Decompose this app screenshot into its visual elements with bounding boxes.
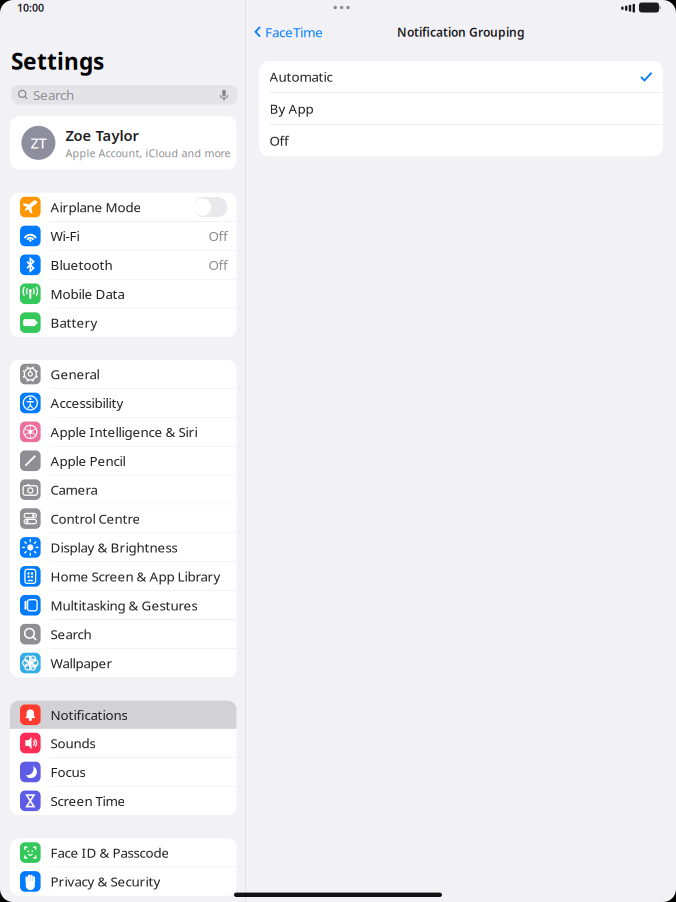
button[interactable]: Control Centre: [10, 504, 236, 533]
button[interactable]: Bluetooth: [10, 251, 236, 280]
button[interactable]: By App: [259, 93, 663, 125]
button[interactable]: Automatic: [259, 61, 663, 93]
staticText: Off: [269, 132, 288, 149]
button[interactable]: Apple Intelligence & Siri: [10, 418, 236, 447]
staticText: Sounds: [50, 734, 95, 752]
button[interactable]: Focus: [10, 758, 236, 787]
button[interactable]: Wallpaper: [10, 649, 236, 677]
staticText: Home Screen & App Library: [50, 567, 220, 585]
staticText: Apple Intelligence & Siri: [50, 423, 197, 441]
staticText: By App: [269, 100, 313, 117]
staticText: Zoe Taylor: [65, 125, 138, 145]
button[interactable]: Search: [11, 85, 237, 104]
button[interactable]: Accessibility: [10, 389, 236, 418]
staticText: Automatic: [269, 68, 332, 85]
staticText: Bluetooth: [50, 256, 112, 274]
staticText: ZT: [30, 133, 46, 153]
staticText: Privacy & Security: [50, 873, 160, 890]
button[interactable]: Notifications: [10, 701, 236, 729]
staticText: Display & Brightness: [50, 539, 177, 556]
staticText: Search: [33, 86, 74, 104]
staticText: General: [50, 365, 99, 383]
staticText: Camera: [50, 481, 97, 498]
staticText: Screen Time: [50, 792, 125, 810]
staticText: Off: [208, 256, 227, 274]
staticText: Apple Account, iCloud and more: [65, 146, 230, 160]
button[interactable]: Home Screen & App Library: [10, 562, 236, 591]
staticText: Accessibility: [50, 394, 123, 412]
staticText: Focus: [50, 763, 85, 781]
button[interactable]: FaceTime: [246, 19, 323, 45]
staticText: Battery: [50, 314, 97, 331]
button[interactable]: Display & Brightness: [10, 533, 236, 562]
staticText: FaceTime: [265, 23, 323, 41]
staticText: Settings: [11, 46, 104, 76]
button[interactable]: Face ID & Passcode: [10, 838, 236, 867]
button[interactable]: Search: [10, 620, 236, 649]
staticText: Airplane Mode: [50, 198, 141, 216]
staticText: Search: [50, 625, 91, 643]
staticText: Apple Pencil: [50, 452, 125, 470]
button[interactable]: Multitasking Controls: [325, 2, 358, 13]
staticText: Face ID & Passcode: [50, 844, 169, 861]
staticText: Control Centre: [50, 510, 140, 527]
button[interactable]: Camera: [10, 475, 236, 504]
button[interactable]: Multitasking & Gestures: [10, 591, 236, 620]
staticText: Notification Grouping: [397, 24, 525, 40]
button[interactable]: Battery: [10, 308, 236, 337]
staticText: Wallpaper: [50, 654, 112, 672]
button[interactable]: Apple Pencil: [10, 447, 236, 475]
staticText: Notifications: [50, 706, 127, 724]
button[interactable]: Sounds: [10, 729, 236, 758]
staticText: Wi-Fi: [50, 227, 79, 245]
button[interactable]: Screen Time: [10, 787, 236, 815]
button[interactable]: Airplane Mode: [10, 193, 236, 222]
button[interactable]: Privacy & Security: [10, 867, 236, 896]
button[interactable]: General: [10, 360, 236, 389]
button[interactable]: ZT: [10, 116, 236, 169]
staticText: Multitasking & Gestures: [50, 596, 197, 614]
staticText: 10:00: [17, 0, 44, 15]
button[interactable]: Wi-Fi: [10, 222, 236, 251]
button[interactable]: Off: [259, 125, 663, 156]
staticText: Mobile Data: [50, 285, 124, 303]
button[interactable]: Mobile Data: [10, 280, 236, 308]
staticText: Off: [208, 227, 227, 245]
